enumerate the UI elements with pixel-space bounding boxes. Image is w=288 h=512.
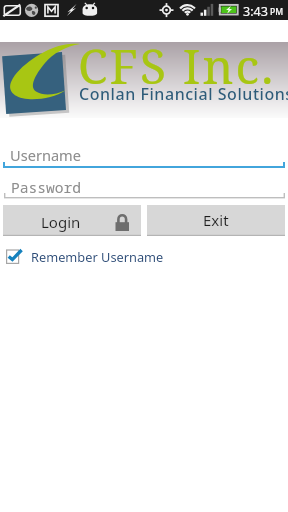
staticText: Exit <box>203 210 229 230</box>
staticText: Username <box>10 145 81 165</box>
staticText: Login <box>41 212 81 232</box>
staticText: Remember Username <box>31 248 164 265</box>
button[interactable]: Username <box>0 145 288 169</box>
staticText: 3:43 <box>243 3 268 20</box>
staticText: CFS Inc. <box>78 33 276 98</box>
staticText: PM <box>270 6 284 18</box>
button[interactable]: Password <box>0 175 288 199</box>
button[interactable]: Remember Username <box>0 245 288 269</box>
staticText: Conlan Financial Solutions <box>79 83 288 105</box>
staticText: Password <box>11 177 82 197</box>
button[interactable]: Exit <box>147 205 285 236</box>
button[interactable]: Login <box>3 205 141 236</box>
